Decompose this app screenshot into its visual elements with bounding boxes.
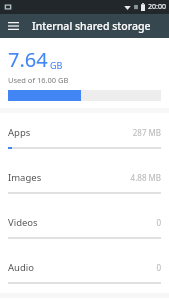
staticText: Videos xyxy=(8,216,38,229)
staticText: Internal shared storage xyxy=(32,19,151,33)
staticText: Images xyxy=(8,171,42,184)
staticText: GB xyxy=(50,59,63,71)
button[interactable]: Apps xyxy=(0,113,169,158)
staticText: Audio xyxy=(8,261,34,274)
staticText: Apps xyxy=(8,126,31,139)
button[interactable]: Audio xyxy=(0,248,169,293)
button[interactable]: Open navigation drawer xyxy=(4,17,22,35)
staticText: 0 xyxy=(156,262,161,273)
staticText: 4.88 MB xyxy=(130,172,161,183)
staticText: Used of 16.00 GB xyxy=(8,75,69,85)
staticText: 287 MB xyxy=(132,127,161,138)
staticText: 0 xyxy=(156,217,161,228)
button[interactable]: Videos xyxy=(0,203,169,248)
button[interactable]: Images xyxy=(0,158,169,203)
staticText: 20:00 xyxy=(148,2,166,12)
staticText: 7.64 xyxy=(8,46,48,73)
